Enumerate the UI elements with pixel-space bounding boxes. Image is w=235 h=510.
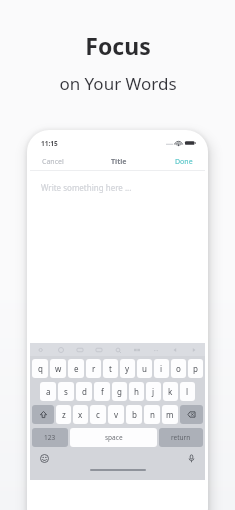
button[interactable]: m (162, 405, 178, 424)
button[interactable]: p (188, 359, 203, 378)
button[interactable]: t (103, 359, 118, 378)
staticText: p (193, 363, 198, 374)
button[interactable]: Format tool 8 (170, 345, 179, 354)
staticText: q (38, 363, 43, 374)
staticText: e (74, 363, 79, 374)
button[interactable]: Voice input (184, 451, 198, 465)
staticText: Focus (85, 30, 151, 61)
button[interactable]: space (70, 428, 157, 447)
staticText: i (160, 363, 163, 374)
staticText: f (101, 386, 104, 397)
staticText: g (117, 386, 122, 397)
staticText: o (176, 363, 181, 374)
staticText: u (142, 363, 147, 374)
staticText: w (55, 363, 62, 374)
button[interactable]: q (32, 359, 48, 378)
button[interactable]: Format tool 5 (113, 345, 122, 354)
button[interactable]: Done (173, 155, 195, 169)
button[interactable]: z (56, 405, 71, 424)
staticText: v (114, 409, 119, 420)
button[interactable]: Format tool 2 (56, 345, 65, 354)
staticText: on Your Words (59, 72, 177, 95)
button[interactable]: b (126, 405, 142, 424)
button[interactable]: y (120, 359, 135, 378)
button[interactable]: s (58, 382, 74, 401)
button[interactable]: Cancel (40, 155, 66, 169)
staticText: return (171, 433, 191, 442)
staticText: 123 (44, 433, 56, 442)
button[interactable]: v (108, 405, 124, 424)
staticText: Title (111, 157, 127, 167)
staticText: k (168, 386, 173, 397)
button[interactable]: u (137, 359, 152, 378)
button[interactable]: Format tool 4 (94, 345, 103, 354)
staticText: d (82, 386, 87, 397)
button[interactable]: l (180, 382, 195, 401)
staticText: space (105, 433, 123, 442)
staticText: Cancel (42, 157, 64, 167)
staticText: j (152, 386, 155, 397)
button[interactable]: r (86, 359, 101, 378)
button[interactable]: a (40, 382, 56, 401)
staticText: n (150, 409, 155, 420)
staticText: a (46, 386, 51, 397)
button[interactable]: c (90, 405, 106, 424)
staticText: r (92, 363, 96, 374)
button[interactable]: j (146, 382, 161, 401)
button[interactable]: i (154, 359, 169, 378)
button[interactable]: f (94, 382, 110, 401)
button[interactable]: e (68, 359, 84, 378)
button[interactable]: k (163, 382, 178, 401)
staticText: Done (175, 157, 193, 167)
button[interactable]: Shift (32, 405, 54, 424)
button[interactable]: Emoji keyboard (37, 451, 51, 465)
button[interactable]: h (129, 382, 144, 401)
staticText: x (78, 409, 83, 420)
button[interactable]: w (50, 359, 66, 378)
button[interactable]: d (76, 382, 92, 401)
button[interactable]: n (144, 405, 160, 424)
staticText: y (125, 363, 130, 374)
staticText: c (96, 409, 100, 420)
button[interactable]: Format tool 1 (37, 345, 46, 354)
staticText: h (134, 386, 139, 397)
staticText: l (186, 386, 189, 397)
staticText: t (109, 363, 112, 374)
staticText: m (166, 409, 174, 420)
button[interactable]: 123 (32, 428, 68, 447)
button[interactable]: g (112, 382, 127, 401)
staticText: z (62, 409, 66, 420)
button[interactable]: o (171, 359, 186, 378)
staticText: s (64, 386, 68, 397)
button[interactable]: Format tool 9 (189, 345, 198, 354)
button[interactable]: return (159, 428, 203, 447)
staticText: 11:15 (41, 139, 58, 148)
button[interactable]: Format tool 6 (132, 345, 141, 354)
button[interactable]: Backspace (180, 405, 203, 424)
button[interactable]: Format tool 3 (75, 345, 84, 354)
button[interactable]: x (73, 405, 88, 424)
staticText: Write something here ... (41, 182, 132, 193)
staticText: b (132, 409, 137, 420)
